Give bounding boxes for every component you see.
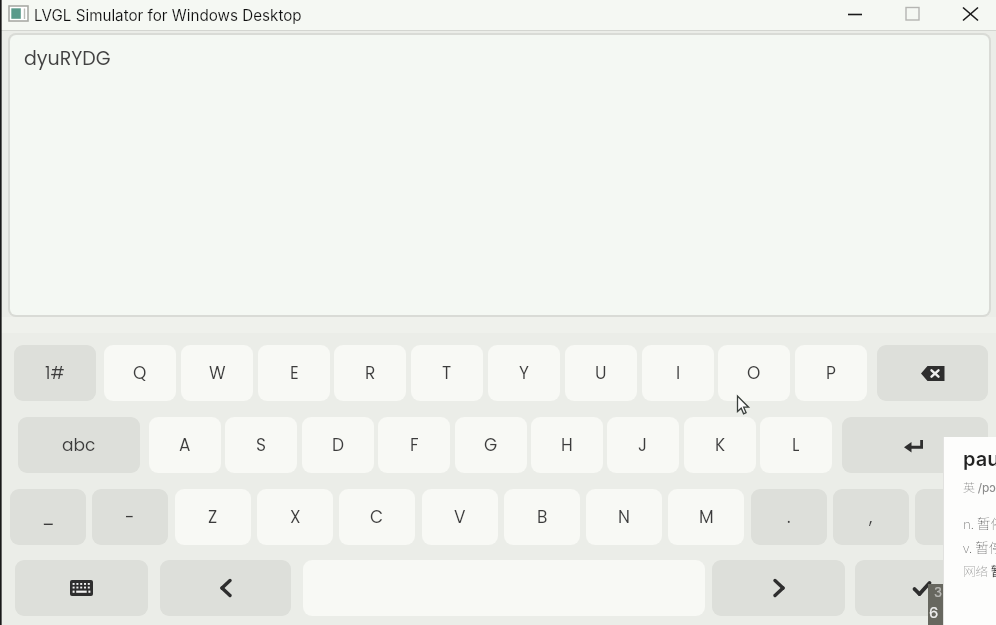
- staticText: L: [792, 433, 800, 457]
- button[interactable]: LVGL Simulator for Windows Desktop: [34, 0, 434, 30]
- staticText: _: [42, 505, 55, 529]
- staticText: .: [787, 505, 791, 529]
- button[interactable]: M: [668, 489, 744, 545]
- staticText: C: [370, 505, 384, 529]
- button[interactable]: P: [795, 345, 867, 401]
- staticText: 英 /pɔ:z/: [963, 478, 996, 495]
- staticText: Y: [519, 361, 529, 385]
- staticText: Q: [133, 361, 147, 385]
- button[interactable]: W: [181, 345, 253, 401]
- button[interactable]: X: [257, 489, 333, 545]
- staticText: H: [561, 433, 573, 457]
- button[interactable]: C: [339, 489, 415, 545]
- staticText: LVGL Simulator for Windows Desktop: [34, 6, 302, 24]
- staticText: K: [715, 433, 726, 457]
- staticText: 1#: [45, 361, 65, 385]
- button[interactable]: A: [149, 417, 221, 473]
- button[interactable]: [15, 560, 148, 616]
- button[interactable]: .: [751, 489, 827, 545]
- staticText: paus: [963, 447, 996, 471]
- staticText: M: [699, 505, 714, 529]
- button[interactable]: D: [302, 417, 374, 473]
- staticText: P: [826, 361, 836, 385]
- button[interactable]: 1#: [14, 345, 96, 401]
- staticText: -: [125, 505, 135, 529]
- button[interactable]: R: [334, 345, 406, 401]
- button[interactable]: dyuRYDG: [10, 35, 989, 315]
- button[interactable]: B: [504, 489, 580, 545]
- staticText: A: [179, 433, 191, 457]
- button[interactable]: [840, 3, 870, 28]
- staticText: I: [676, 361, 681, 385]
- button[interactable]: [855, 560, 988, 616]
- staticText: Z: [208, 505, 218, 529]
- staticText: ,: [869, 505, 873, 529]
- button[interactable]: _: [10, 489, 86, 545]
- button[interactable]: [842, 417, 988, 473]
- button[interactable]: F: [378, 417, 450, 473]
- button[interactable]: J: [607, 417, 679, 473]
- button[interactable]: K: [684, 417, 756, 473]
- button[interactable]: paus: [943, 437, 996, 625]
- staticText: T: [442, 361, 452, 385]
- button[interactable]: T: [411, 345, 483, 401]
- button[interactable]: [712, 560, 845, 616]
- staticText: X: [290, 505, 301, 529]
- staticText: S: [256, 433, 266, 457]
- button[interactable]: Z: [175, 489, 251, 545]
- button[interactable]: N: [586, 489, 662, 545]
- staticText: 6: [929, 603, 939, 621]
- staticText: 3: [934, 584, 943, 600]
- staticText: W: [209, 361, 226, 385]
- button[interactable]: G: [455, 417, 527, 473]
- staticText: F: [410, 433, 419, 457]
- button[interactable]: S: [225, 417, 297, 473]
- staticText: v. 暂停: [963, 537, 996, 557]
- button[interactable]: ,: [833, 489, 909, 545]
- staticText: 网络 暂停: [963, 561, 996, 579]
- button[interactable]: [898, 3, 928, 28]
- button[interactable]: abc: [18, 417, 140, 473]
- staticText: J: [638, 433, 648, 457]
- staticText: G: [484, 433, 498, 457]
- staticText: N: [618, 505, 630, 529]
- staticText: R: [365, 361, 376, 385]
- button[interactable]: L: [760, 417, 832, 473]
- button[interactable]: Q: [104, 345, 176, 401]
- staticText: dyuRYDG: [24, 45, 111, 72]
- button[interactable]: Y: [488, 345, 560, 401]
- button[interactable]: E: [258, 345, 330, 401]
- staticText: B: [537, 505, 548, 529]
- button[interactable]: [877, 345, 988, 401]
- staticText: E: [290, 361, 299, 385]
- button[interactable]: H: [531, 417, 603, 473]
- staticText: O: [747, 361, 761, 385]
- staticText: D: [332, 433, 345, 457]
- staticText: abc: [62, 433, 96, 457]
- button[interactable]: [955, 3, 985, 28]
- staticText: U: [595, 361, 607, 385]
- button[interactable]: [160, 560, 291, 616]
- button[interactable]: V: [422, 489, 498, 545]
- button[interactable]: I: [642, 345, 714, 401]
- staticText: V: [454, 505, 466, 529]
- button[interactable]: U: [565, 345, 637, 401]
- button[interactable]: O: [718, 345, 790, 401]
- button[interactable]: :: [915, 489, 991, 545]
- staticText: n. 暂停: [963, 513, 996, 533]
- button[interactable]: -: [92, 489, 168, 545]
